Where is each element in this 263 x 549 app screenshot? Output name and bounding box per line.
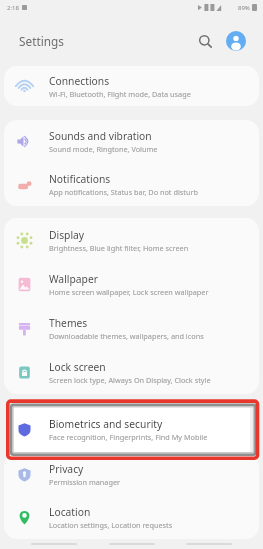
button[interactable]: Location [4, 496, 259, 539]
staticText: Settings [19, 33, 64, 49]
staticText: 2:18 [7, 4, 19, 12]
staticText: Connections [49, 74, 110, 88]
staticText: Sound mode, Ringtone, Volume [49, 144, 158, 154]
staticText: Screen lock type, Always On Display, Clo… [49, 375, 211, 385]
staticText: Location [49, 505, 91, 519]
staticText: 89% [238, 4, 250, 12]
staticText: Themes [49, 316, 88, 330]
staticText: Sounds and vibration [49, 129, 152, 143]
button[interactable]: Notifications [4, 163, 259, 206]
button[interactable]: Lock screen [4, 350, 259, 394]
staticText: Biometrics and security [49, 417, 163, 431]
button[interactable]: Account [223, 28, 249, 54]
staticText: Home screen wallpaper, Lock screen wallp… [49, 287, 209, 297]
staticText: Face recognition, Fingerprints, Find My … [49, 432, 208, 442]
button[interactable]: Sounds and vibration [4, 120, 259, 163]
button[interactable]: Display [4, 218, 259, 262]
staticText: Lock screen [49, 360, 106, 374]
staticText: Downloadable themes, wallpapers, and ico… [49, 331, 204, 341]
staticText: Permission manager [49, 477, 121, 487]
button[interactable]: Search [192, 28, 218, 54]
staticText: Display [49, 228, 85, 242]
staticText: Privacy [49, 462, 84, 476]
staticText: Location settings, Location requests [49, 520, 173, 530]
button[interactable]: Connections [4, 66, 259, 106]
staticText: Wi-Fi, Bluetooth, Flight mode, Data usag… [49, 89, 191, 99]
button[interactable]: Themes [4, 306, 259, 350]
staticText: Notifications [49, 172, 111, 186]
button[interactable]: Wallpaper [4, 262, 259, 306]
staticText: Wallpaper [49, 272, 98, 286]
button[interactable]: Biometrics and security [4, 406, 259, 452]
button[interactable]: Privacy [4, 453, 259, 496]
staticText: App notifications, Status bar, Do not di… [49, 187, 198, 197]
staticText: Brightness, Blue light filter, Home scre… [49, 243, 189, 253]
